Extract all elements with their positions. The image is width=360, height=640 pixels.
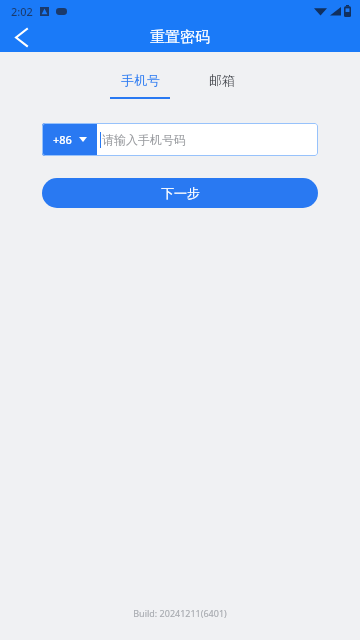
staticText: 手机号 bbox=[121, 72, 160, 88]
button[interactable]: 下一步 bbox=[42, 178, 318, 208]
staticText: Build: 20241211(6401) bbox=[133, 607, 227, 619]
staticText: +86 bbox=[53, 132, 72, 147]
button[interactable]: +86 bbox=[42, 123, 97, 156]
button[interactable]: Back bbox=[0, 22, 42, 52]
staticText: 邮箱 bbox=[209, 72, 235, 88]
staticText: 重置密码 bbox=[150, 28, 210, 47]
button[interactable]: 邮箱 bbox=[193, 52, 251, 102]
staticText: 下一步 bbox=[161, 185, 200, 201]
button[interactable]: 请输入手机号码 bbox=[97, 123, 318, 156]
staticText: 2:02 bbox=[11, 4, 33, 19]
staticText: 请输入手机号码 bbox=[102, 132, 186, 147]
button[interactable]: 手机号 bbox=[109, 52, 171, 102]
